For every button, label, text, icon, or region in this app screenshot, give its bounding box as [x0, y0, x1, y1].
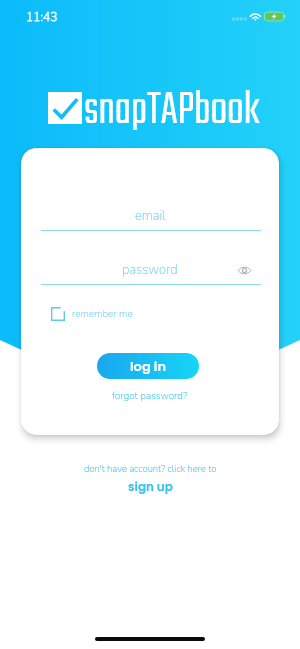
staticText: forgot password? [112, 389, 188, 403]
button[interactable]: email [21, 202, 279, 230]
button[interactable]: Show password [233, 259, 256, 282]
button[interactable]: remember me [51, 305, 133, 323]
button[interactable]: password [21, 256, 279, 284]
staticText: don't have account? click here to [84, 462, 217, 475]
staticText: snapTAPbook [84, 76, 260, 146]
button[interactable]: forgot password? [21, 386, 279, 406]
button[interactable]: don't have account? click here to [0, 462, 300, 495]
staticText: email [135, 207, 166, 225]
staticText: 11:43 [26, 9, 58, 25]
staticText: sign up [128, 478, 173, 495]
staticText: log in [130, 357, 167, 375]
staticText: password [122, 261, 178, 279]
staticText: remember me [72, 307, 133, 321]
button[interactable]: log in [97, 353, 199, 379]
